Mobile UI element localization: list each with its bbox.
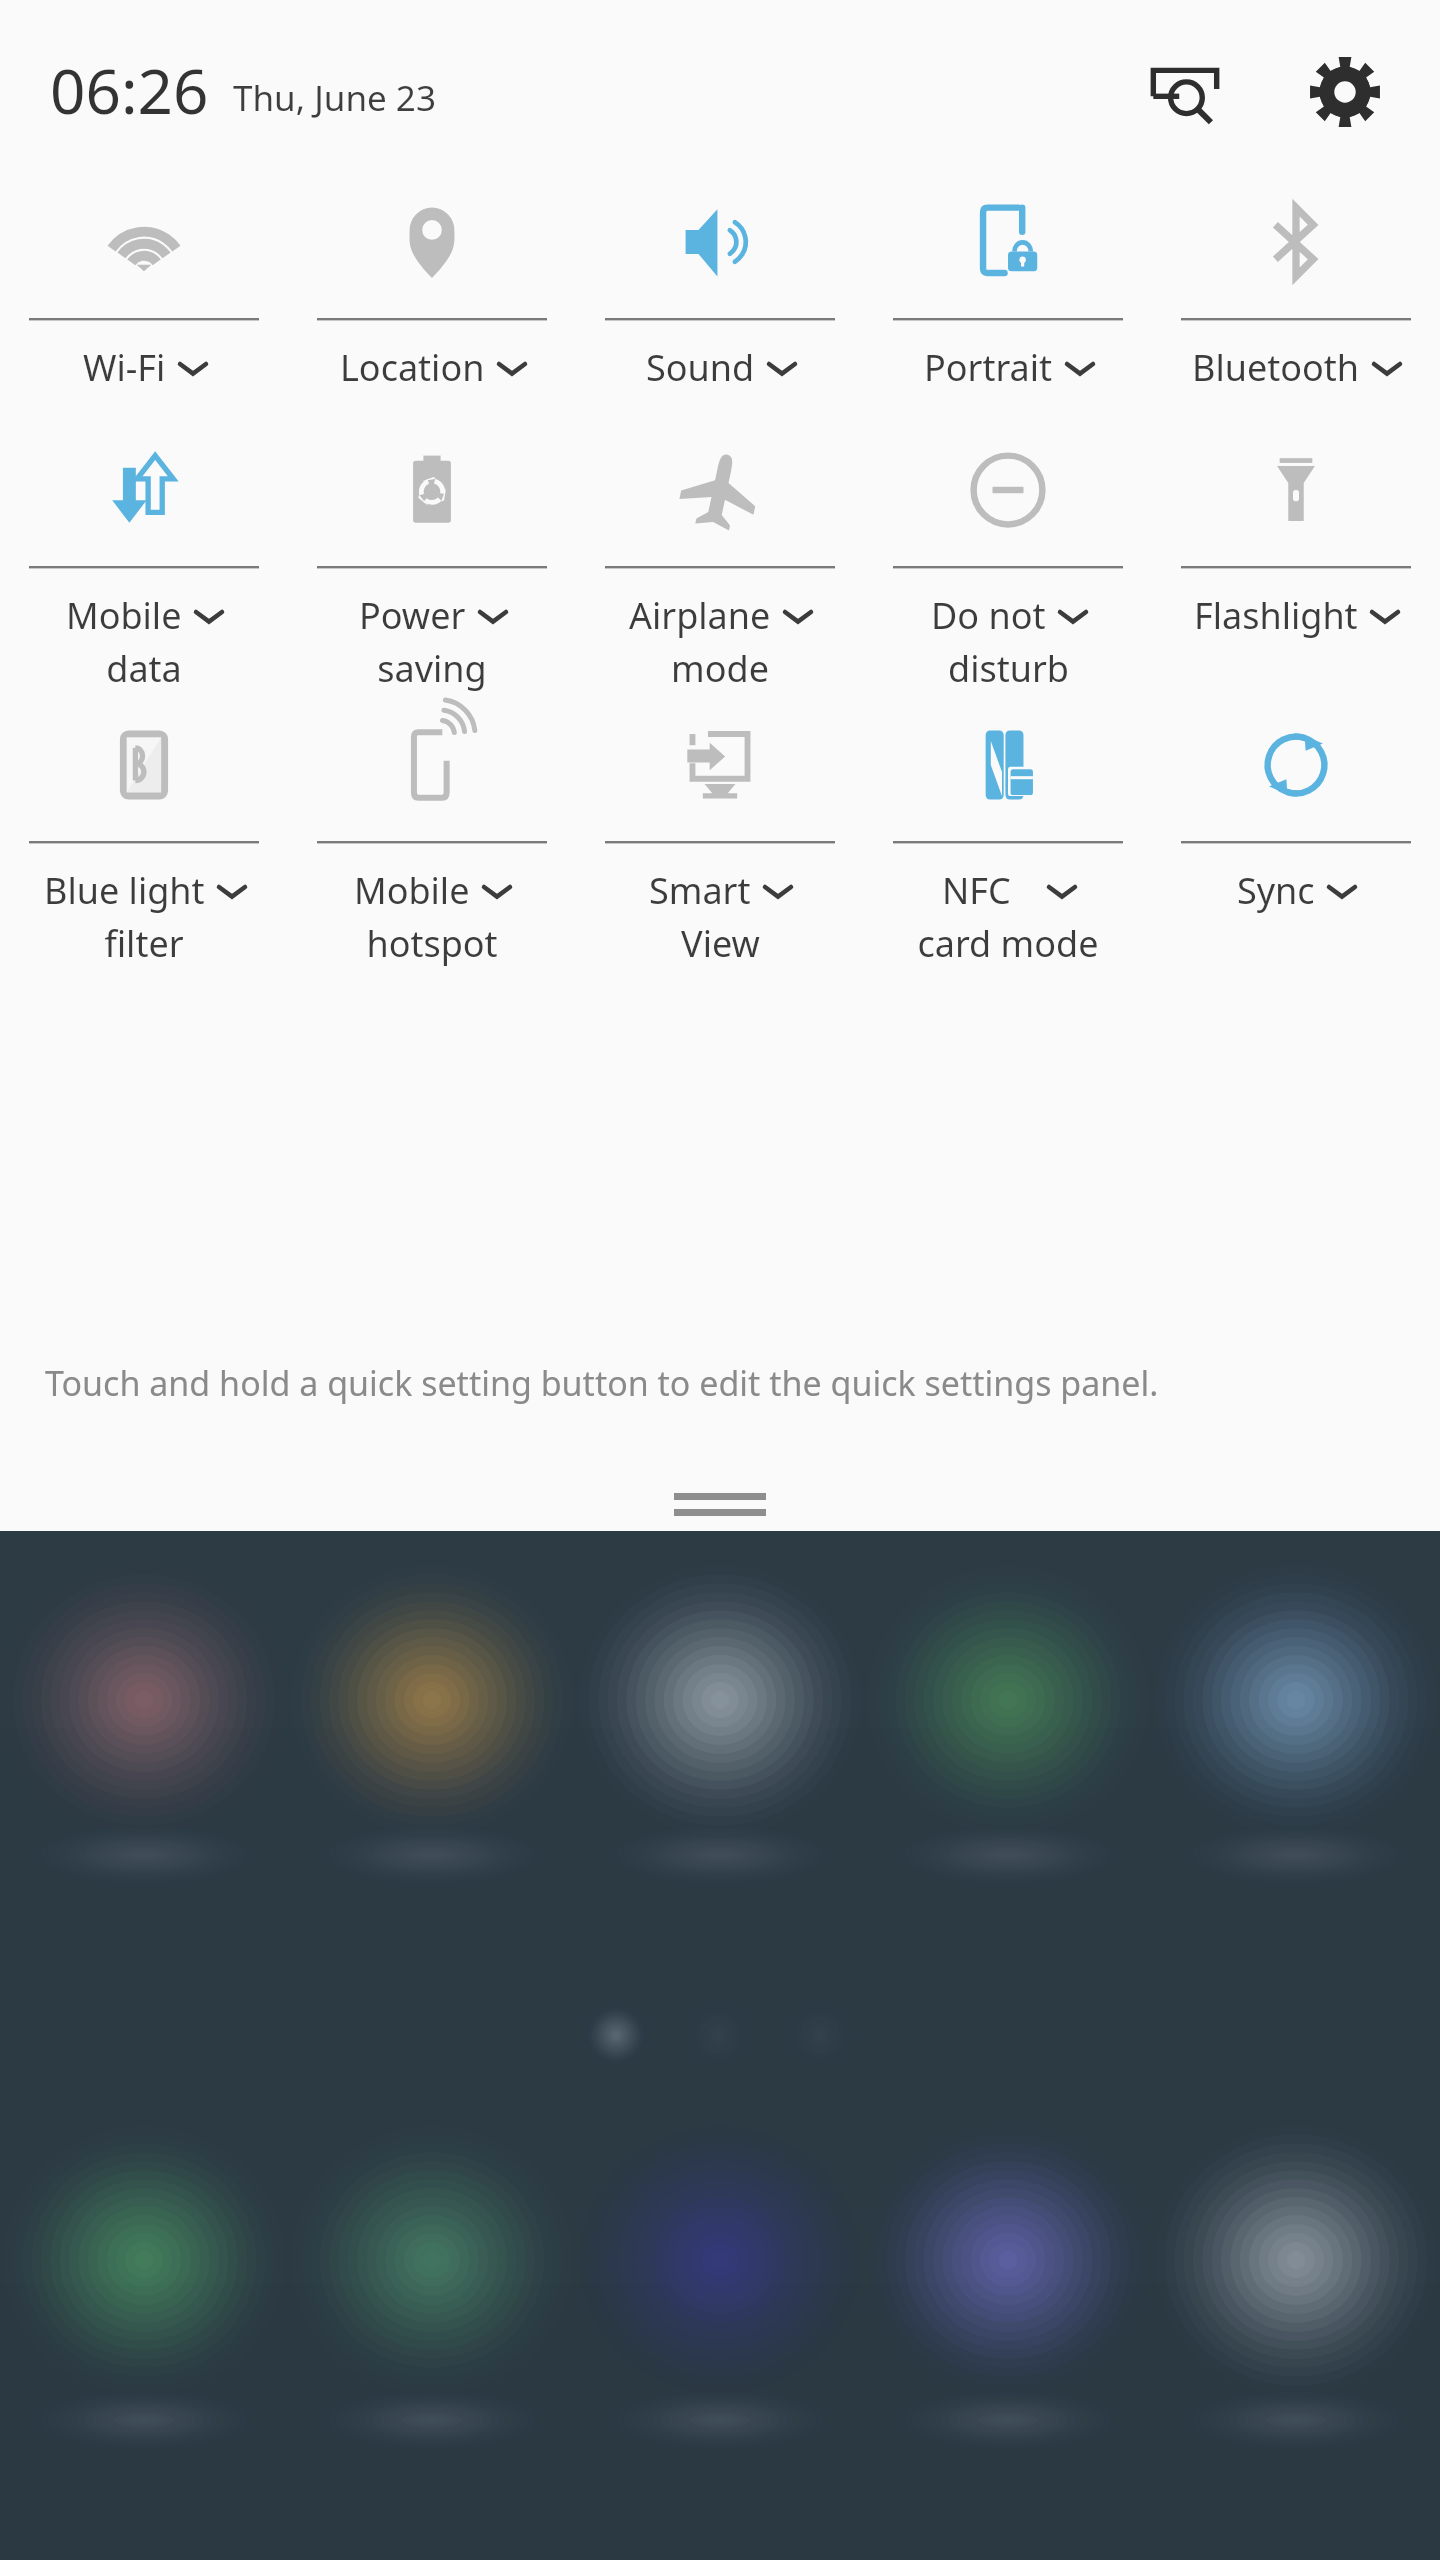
staticText: saving <box>377 644 487 693</box>
button[interactable]: Sound <box>576 182 864 392</box>
staticText: Touch and hold a quick setting button to… <box>45 1360 1159 1406</box>
button[interactable]: Do not <box>864 430 1152 693</box>
staticText: 06:26 <box>50 48 209 132</box>
staticText: Sync <box>1237 866 1315 915</box>
button[interactable]: Settings <box>1290 37 1400 147</box>
button[interactable]: Search <box>1130 37 1240 147</box>
staticText: hotspot <box>366 919 498 968</box>
staticText: View <box>681 919 760 968</box>
button[interactable]: Sync <box>1152 705 1440 915</box>
staticText: NFC <box>942 866 1011 915</box>
staticText: Wi-Fi <box>83 343 166 392</box>
staticText: mode <box>671 644 769 693</box>
staticText: disturb <box>948 644 1069 693</box>
button[interactable]: Blue light <box>0 705 288 968</box>
staticText: Smart <box>649 866 751 915</box>
staticText: Mobile <box>66 591 182 640</box>
staticText: Mobile <box>354 866 470 915</box>
staticText: card mode <box>917 919 1099 968</box>
staticText: Sound <box>646 343 755 392</box>
staticText: Do not <box>931 591 1046 640</box>
button[interactable]: Smart <box>576 705 864 968</box>
staticText: Blue light <box>44 866 205 915</box>
button[interactable]: Bluetooth <box>1152 182 1440 392</box>
staticText: Airplane <box>629 591 771 640</box>
staticText: data <box>106 644 182 693</box>
button[interactable]: NFC <box>864 705 1152 968</box>
staticText: Power <box>359 591 466 640</box>
staticText: Flashlight <box>1194 591 1358 640</box>
staticText: Location <box>340 343 485 392</box>
staticText: Thu, June 23 <box>233 74 436 122</box>
button[interactable]: Airplane <box>576 430 864 693</box>
staticText: Portrait <box>924 343 1053 392</box>
button[interactable]: Mobile <box>288 705 576 968</box>
staticText: Bluetooth <box>1192 343 1360 392</box>
button[interactable]: Location <box>288 182 576 392</box>
button[interactable]: Mobile <box>0 430 288 693</box>
button[interactable]: Power <box>288 430 576 693</box>
button[interactable]: Flashlight <box>1152 430 1440 640</box>
button[interactable]: Portrait <box>864 182 1152 392</box>
button[interactable]: Wi-Fi <box>0 182 288 392</box>
staticText: filter <box>104 919 184 968</box>
